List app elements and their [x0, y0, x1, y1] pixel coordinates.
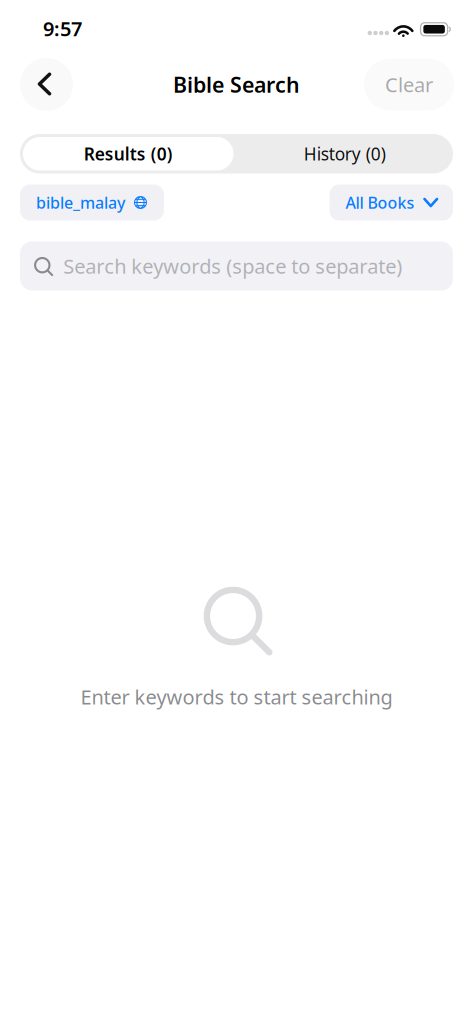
staticText: Enter keywords to start searching — [80, 683, 392, 710]
staticText: All Books — [345, 192, 414, 213]
staticText: 9:57 — [43, 15, 82, 42]
staticText: History (0) — [304, 142, 386, 165]
button[interactable]: bible_malay — [20, 184, 164, 220]
staticText: Bible Search — [173, 70, 300, 99]
button[interactable]: Clear — [364, 58, 454, 110]
staticText: Search keywords (space to separate) — [63, 253, 402, 279]
staticText: bible_malay — [36, 192, 125, 213]
button[interactable]: Results (0) — [20, 134, 236, 173]
staticText: Results (0) — [84, 142, 173, 165]
button[interactable]: Back — [20, 58, 73, 111]
button[interactable]: History (0) — [236, 134, 453, 173]
staticText: Clear — [385, 71, 433, 98]
button[interactable]: All Books — [329, 184, 453, 220]
